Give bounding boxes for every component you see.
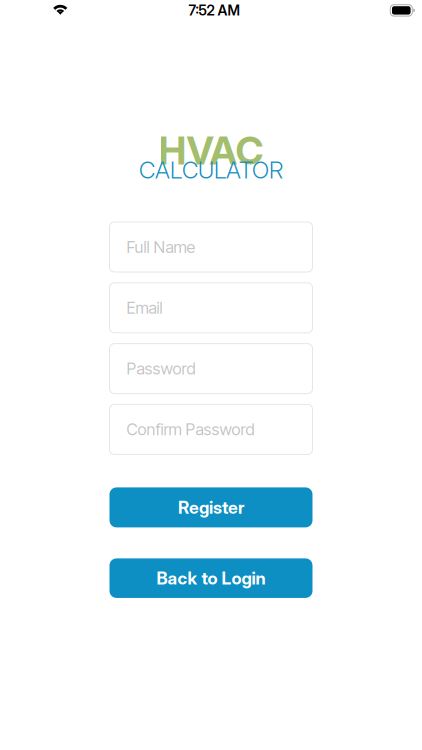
button[interactable]: Password bbox=[109, 344, 312, 394]
button[interactable]: Email bbox=[109, 283, 312, 333]
button[interactable]: Confirm Password bbox=[109, 404, 312, 454]
staticText: 7:52 AM bbox=[188, 2, 239, 19]
button[interactable]: Full Name bbox=[109, 222, 312, 272]
staticText: Password bbox=[126, 359, 195, 378]
staticText: Full Name bbox=[126, 237, 195, 257]
staticText: CALCULATOR bbox=[139, 156, 283, 184]
staticText: Email bbox=[126, 298, 162, 318]
button[interactable]: Register bbox=[109, 487, 312, 527]
button[interactable]: Back to Login bbox=[109, 558, 312, 598]
staticText: Register bbox=[178, 497, 244, 518]
staticText: Confirm Password bbox=[126, 420, 254, 439]
staticText: Back to Login bbox=[156, 568, 265, 589]
staticText: HVAC bbox=[158, 127, 263, 174]
